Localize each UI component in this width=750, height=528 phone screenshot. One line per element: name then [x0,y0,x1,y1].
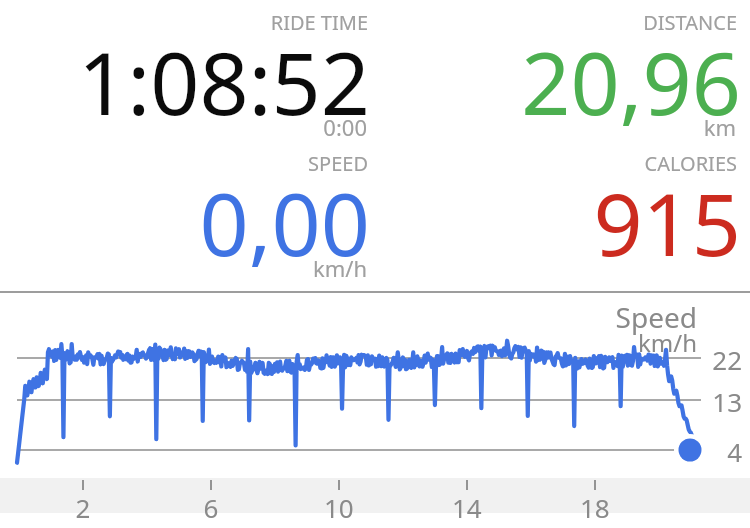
button[interactable]: Ride statistics and speed chart [0,0,750,528]
